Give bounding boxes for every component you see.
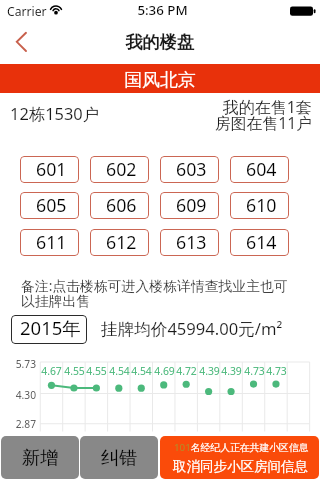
button[interactable]: 纠错	[80, 436, 158, 479]
staticText: 4.39	[199, 364, 220, 378]
staticText: 备注:点击楼栋可进入楼栋详情查找业主也可	[21, 276, 288, 295]
staticText: 4.54	[109, 364, 130, 378]
staticText: 以挂牌出售	[21, 293, 91, 310]
staticText: 4.73	[244, 364, 265, 378]
button[interactable]: 601	[20, 156, 79, 183]
staticText: 4.73	[266, 364, 287, 378]
staticText: 4.54	[131, 364, 152, 378]
staticText: 2015年	[20, 315, 81, 340]
button[interactable]: 604	[230, 156, 289, 183]
button[interactable]: 605	[20, 192, 79, 219]
staticText: 601	[36, 157, 67, 181]
staticText: 我的在售1套	[222, 96, 312, 118]
staticText: 挂牌均价45994.00元/m²	[101, 317, 283, 340]
staticText: 新增	[22, 446, 59, 469]
staticText: 国风北京	[124, 69, 196, 92]
button[interactable]: 613	[160, 229, 219, 256]
staticText: 609	[176, 193, 207, 217]
staticText: 605	[36, 193, 67, 217]
button[interactable]: 612	[90, 229, 149, 256]
staticText: Carrier	[7, 3, 47, 20]
button[interactable]: 2015年	[11, 315, 87, 344]
staticText: 4.72	[176, 364, 197, 378]
staticText: 4.69	[154, 364, 175, 378]
staticText: 4.67	[41, 364, 62, 378]
staticText: 取消同步小区房间信息	[173, 458, 308, 475]
staticText: 602	[106, 157, 137, 181]
button[interactable]: 602	[90, 156, 149, 183]
staticText: 612	[106, 230, 137, 254]
button[interactable]: Back	[6, 26, 40, 58]
staticText: 101名经纪人正在共建小区信息	[174, 441, 309, 454]
staticText: 4.55	[64, 364, 85, 378]
staticText: 606	[106, 193, 137, 217]
staticText: 604	[246, 157, 277, 181]
staticText: 4.39	[221, 364, 242, 378]
button[interactable]: 603	[160, 156, 219, 183]
staticText: 613	[176, 230, 207, 254]
button[interactable]: 614	[230, 229, 289, 256]
staticText: 5.73	[15, 357, 36, 371]
staticText: 603	[176, 157, 207, 181]
staticText: 611	[36, 230, 67, 254]
staticText: 12栋1530户	[10, 102, 100, 124]
button[interactable]: 606	[90, 192, 149, 219]
button[interactable]: 611	[20, 229, 79, 256]
staticText: 5:36 PM	[137, 1, 188, 19]
staticText: 2.87	[15, 417, 36, 431]
staticText: 4.30	[15, 388, 36, 402]
staticText: 610	[246, 193, 277, 217]
staticText: 房图在售11户	[214, 112, 312, 134]
staticText: 614	[246, 230, 277, 254]
staticText: 我的楼盘	[125, 31, 194, 53]
staticText: 4.55	[86, 364, 107, 378]
staticText: 纠错	[101, 446, 138, 469]
button[interactable]: 610	[230, 192, 289, 219]
button[interactable]: 新增	[1, 436, 79, 479]
button[interactable]: 101名经纪人正在共建小区信息	[160, 436, 319, 479]
button[interactable]: 609	[160, 192, 219, 219]
